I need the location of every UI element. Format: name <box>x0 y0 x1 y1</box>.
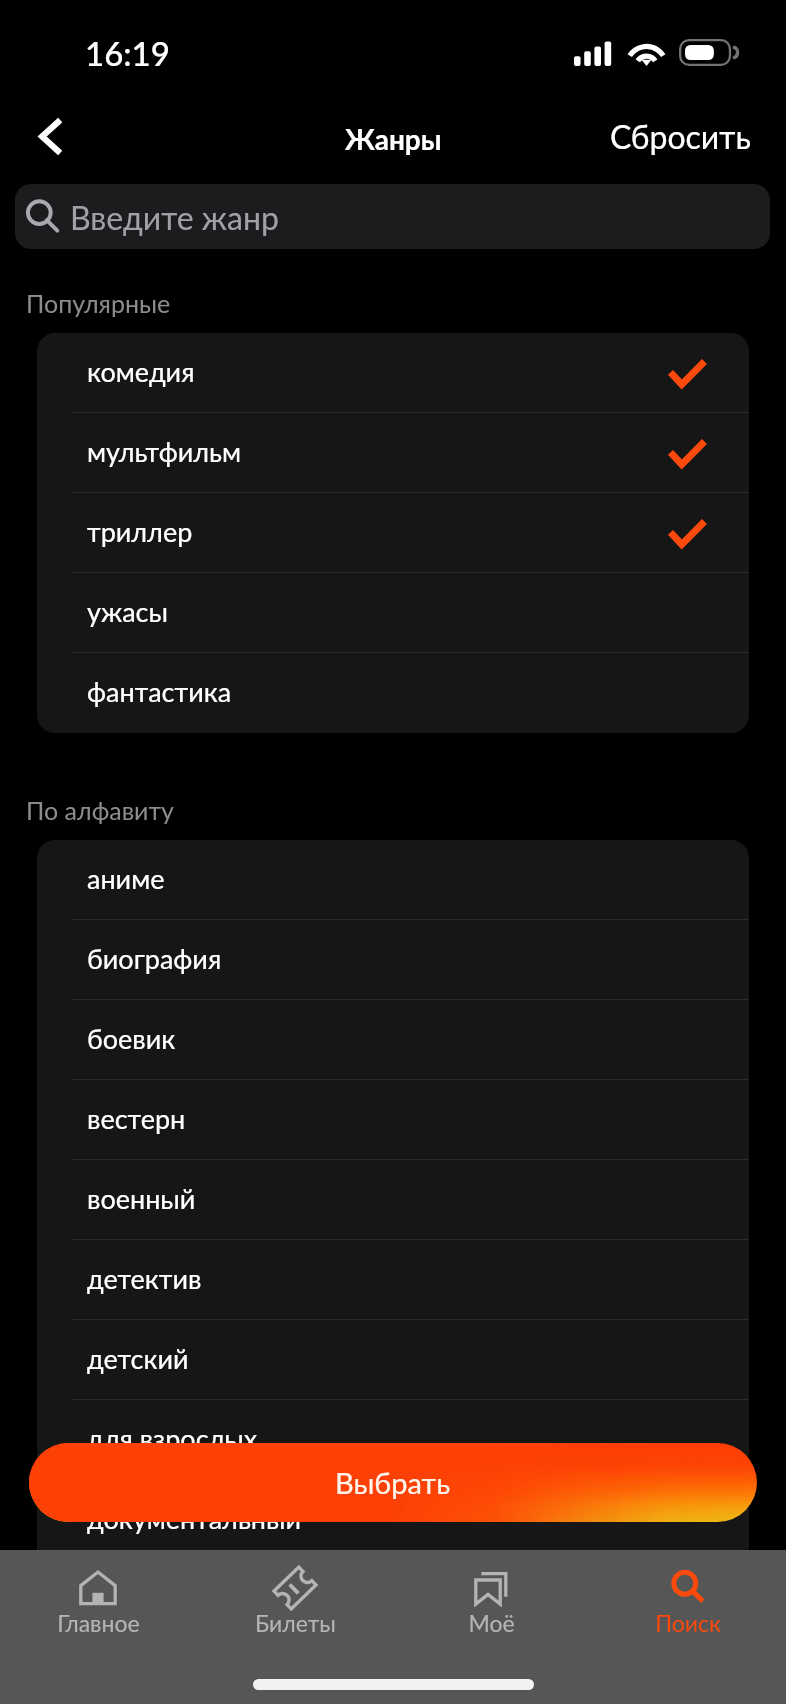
button[interactable]: биография <box>37 920 749 1000</box>
staticText: для взрослых <box>87 1422 258 1454</box>
button[interactable]: Сбросить <box>610 117 751 155</box>
staticText: комедия <box>87 355 195 387</box>
button[interactable]: мультфильм <box>37 413 749 493</box>
staticText: мультфильм <box>87 435 242 467</box>
button[interactable]: Поиск <box>590 1550 786 1654</box>
button[interactable]: Моё <box>393 1550 589 1654</box>
staticText: Сбросить <box>610 117 751 155</box>
staticText: триллер <box>87 515 193 547</box>
button[interactable]: боевик <box>37 1000 749 1080</box>
staticText: Жанры <box>345 122 442 156</box>
staticText: Выбрать <box>335 1465 451 1500</box>
button[interactable]: детский <box>37 1320 749 1400</box>
staticText: Моё <box>468 1609 515 1637</box>
staticText: Введите жанр <box>70 198 279 236</box>
staticText: военный <box>87 1182 196 1214</box>
staticText: аниме <box>87 862 165 894</box>
staticText: детектив <box>87 1262 202 1294</box>
staticText: боевик <box>87 1022 176 1054</box>
staticText: Популярные <box>26 288 171 318</box>
staticText: вестерн <box>87 1102 186 1134</box>
button[interactable]: фантастика <box>37 653 749 733</box>
button[interactable]: аниме <box>37 840 749 920</box>
button[interactable]: триллер <box>37 493 749 573</box>
staticText: Главное <box>57 1609 140 1637</box>
staticText: драма <box>87 1582 165 1614</box>
staticText: ужасы <box>87 595 168 627</box>
button[interactable]: вестерн <box>37 1080 749 1160</box>
button[interactable]: ужасы <box>37 573 749 653</box>
staticText: Поиск <box>655 1609 721 1637</box>
staticText: документальный <box>87 1502 302 1534</box>
staticText: 16:19 <box>85 33 170 73</box>
button[interactable]: документальный <box>37 1480 749 1560</box>
staticText: биография <box>87 942 222 974</box>
button[interactable]: драма <box>37 1560 749 1640</box>
button[interactable]: Билеты <box>197 1550 393 1654</box>
button[interactable]: комедия <box>37 333 749 413</box>
button[interactable]: военный <box>37 1160 749 1240</box>
button[interactable]: Back <box>15 101 85 171</box>
button[interactable]: Введите жанр <box>15 184 770 249</box>
staticText: Билеты <box>255 1609 336 1637</box>
button[interactable]: Главное <box>0 1550 196 1654</box>
button[interactable]: для взрослых <box>37 1400 749 1480</box>
button[interactable]: детектив <box>37 1240 749 1320</box>
button[interactable]: Выбрать <box>29 1443 757 1522</box>
staticText: детский <box>87 1342 189 1374</box>
staticText: По алфавиту <box>26 795 175 825</box>
staticText: фантастика <box>87 675 232 707</box>
